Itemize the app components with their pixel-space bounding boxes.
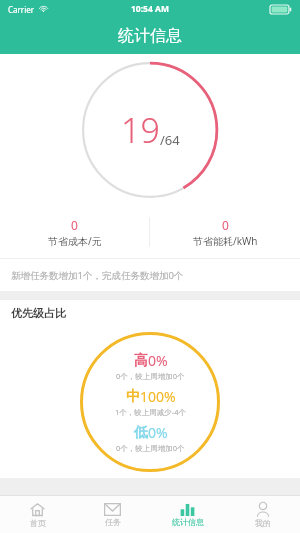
staticText: 我的	[255, 518, 271, 528]
staticText: 任务	[105, 517, 121, 527]
staticText: 1个，较上周减少-4个	[115, 407, 186, 417]
staticText: 0个，较上周增加0个	[116, 443, 185, 453]
staticText: 统计信息	[118, 26, 182, 46]
button[interactable]: 统计信息	[150, 496, 225, 533]
staticText: 19	[121, 107, 160, 153]
button[interactable]: 首页	[0, 496, 75, 533]
staticText: 优先级占比	[11, 306, 66, 320]
staticText: 统计信息	[172, 517, 204, 527]
staticText: 0%	[148, 423, 168, 442]
staticText: 低	[134, 424, 148, 442]
button[interactable]: 任务	[75, 496, 150, 533]
staticText: 10:54 AM	[131, 3, 169, 15]
staticText: 新增任务数增加1个，完成任务数增加0个	[11, 269, 184, 282]
staticText: 高	[134, 352, 148, 370]
staticText: Carrier	[8, 4, 35, 15]
staticText: 0	[71, 217, 78, 233]
staticText: 中	[126, 388, 140, 406]
staticText: 首页	[30, 518, 46, 528]
staticText: 节省能耗/kWh	[193, 234, 258, 248]
staticText: 0%	[148, 351, 168, 370]
staticText: /64	[160, 131, 180, 149]
staticText: 100%	[140, 387, 176, 406]
button[interactable]: 我的	[225, 496, 300, 533]
staticText: 0	[222, 217, 229, 233]
staticText: 节省成本/元	[48, 234, 102, 248]
staticText: 0个，较上周增加0个	[116, 371, 185, 381]
